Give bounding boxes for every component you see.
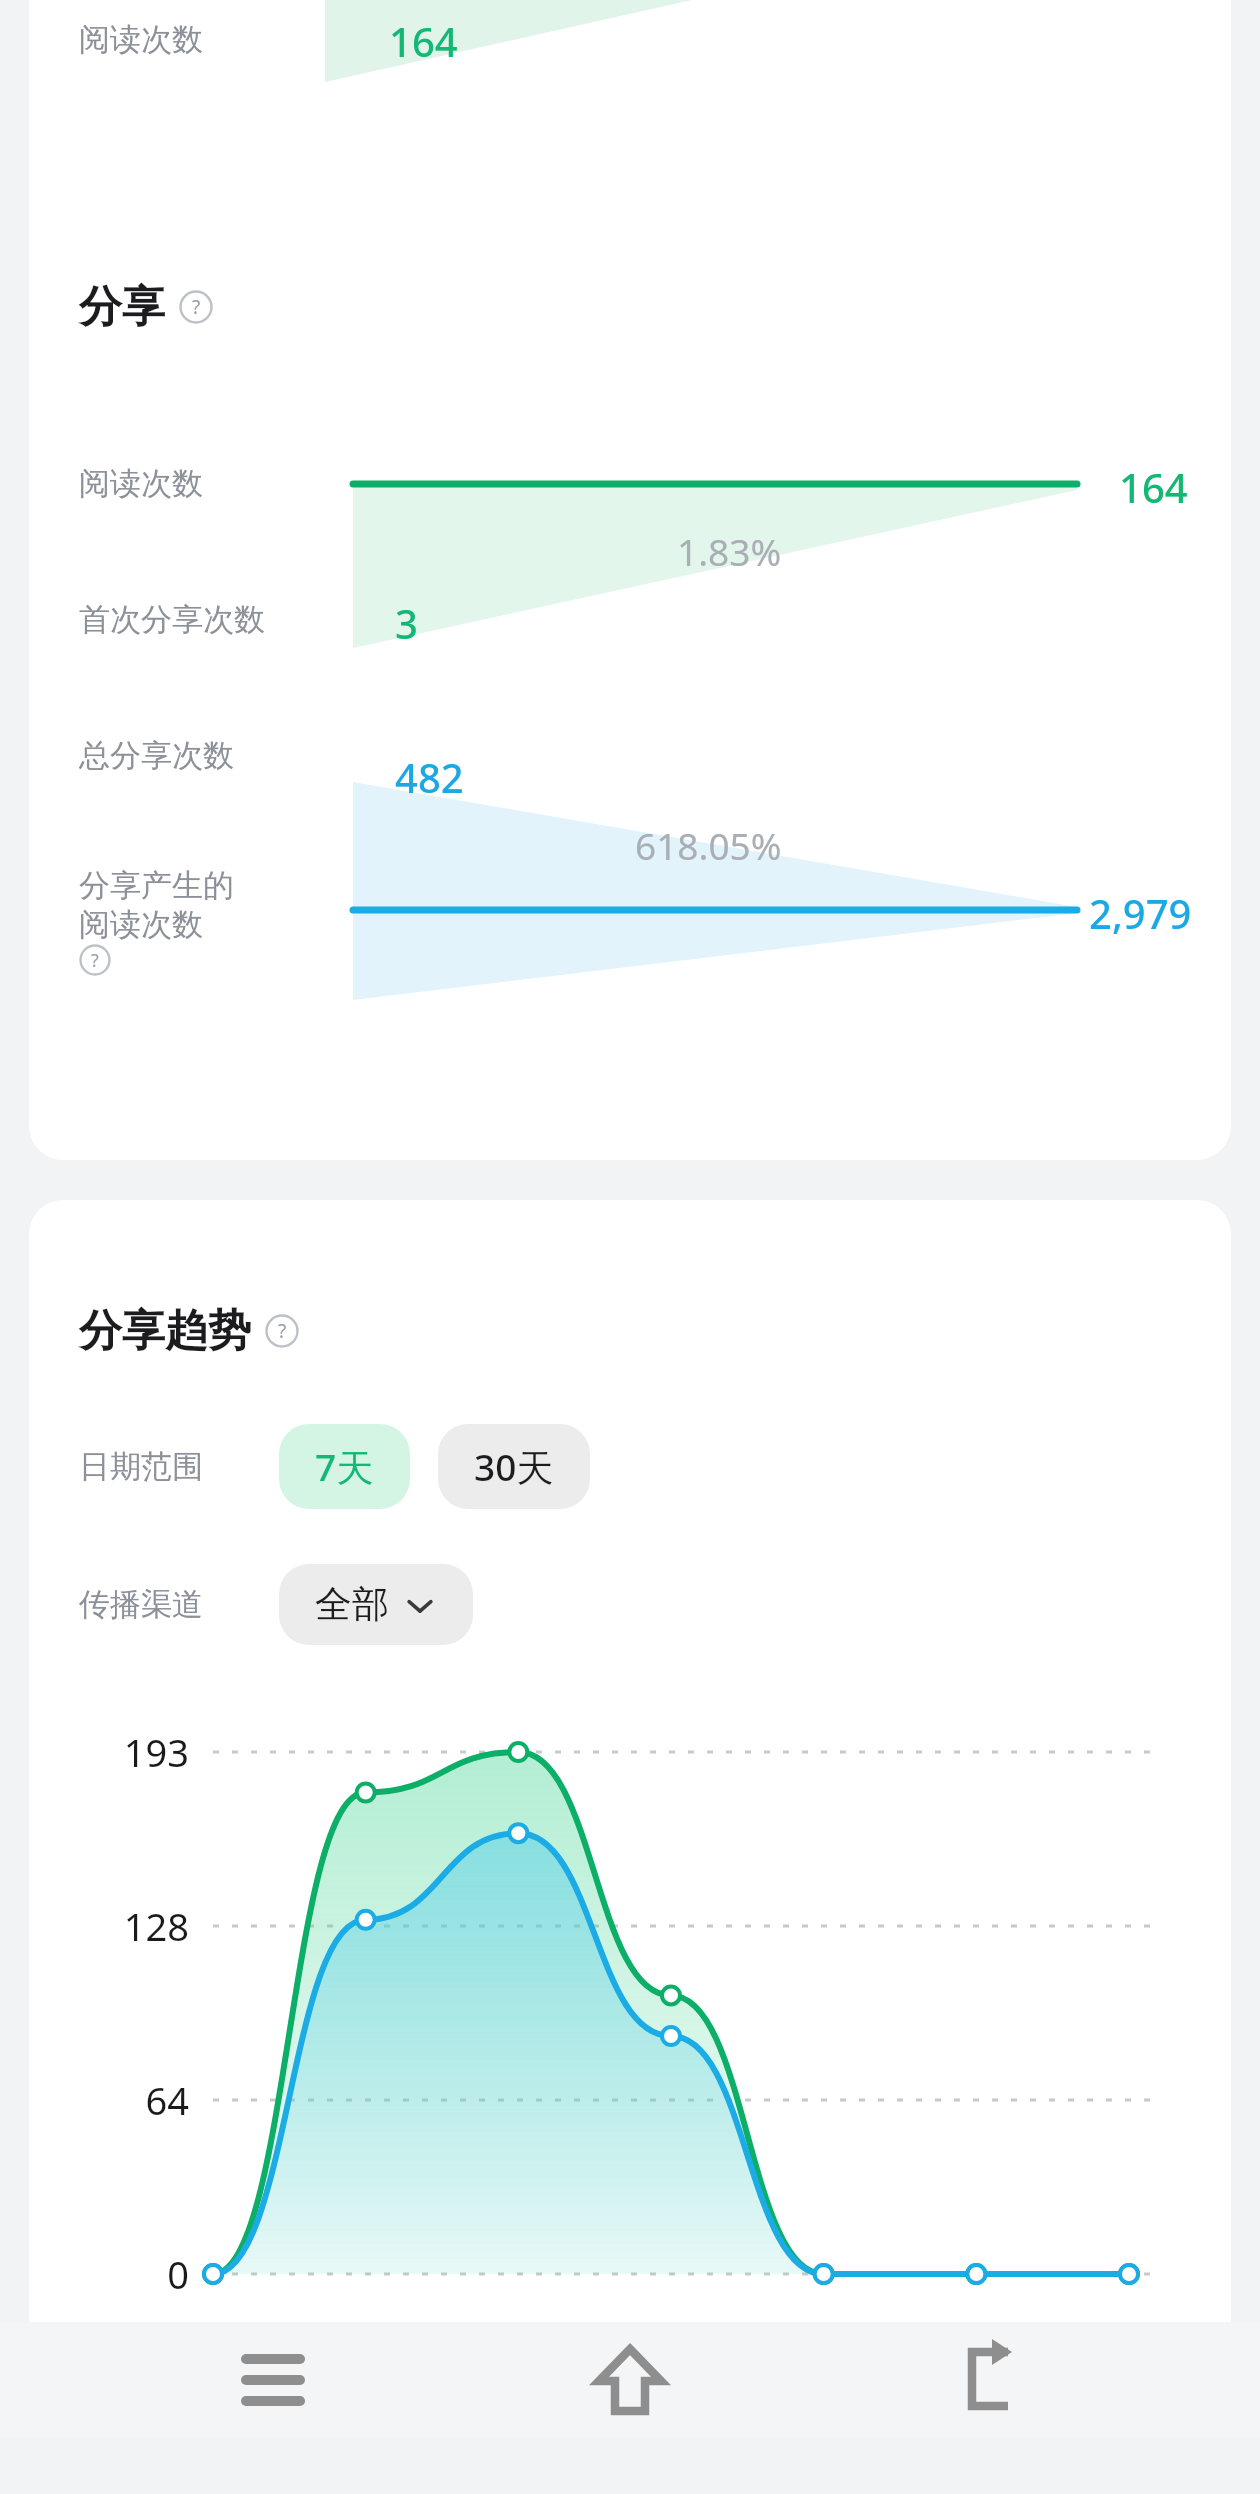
staticText: 2,979 [1089, 886, 1192, 940]
staticText: 07/20 [596, 2318, 746, 2368]
staticText: 07/17 [138, 2318, 288, 2368]
staticText: 总分享次数 [79, 736, 234, 775]
button[interactable]: Help [265, 1314, 299, 1348]
staticText: 分享 [79, 280, 165, 334]
staticText: 阅读次数 [79, 905, 203, 944]
staticText: 分享趋势 [79, 1304, 251, 1358]
staticText: 64 [49, 2074, 189, 2126]
staticText: 传播渠道 [79, 1585, 279, 1624]
button[interactable]: Recent apps [188, 2322, 358, 2438]
button[interactable]: Home [545, 2322, 715, 2438]
button[interactable]: Help [79, 944, 111, 976]
button[interactable]: 30天 [438, 1424, 590, 1509]
staticText: ? [192, 294, 201, 320]
staticText: 首次分享次数 [79, 600, 265, 639]
button[interactable]: Help [179, 290, 213, 324]
staticText: 164 [389, 14, 458, 68]
staticText: 30天 [474, 1441, 554, 1492]
button[interactable]: 全部 [279, 1564, 473, 1645]
staticText: ? [91, 948, 99, 972]
staticText: 07/18 [291, 2318, 441, 2368]
staticText: 3 [395, 596, 418, 650]
staticText: 分享产生的 [79, 866, 234, 905]
staticText: 0 [49, 2248, 189, 2300]
staticText: 618.05% [635, 820, 782, 870]
staticText: 7天 [315, 1441, 374, 1492]
staticText: 164 [1119, 460, 1188, 514]
staticText: 1.83% [677, 526, 782, 576]
staticText: ? [278, 1318, 287, 1344]
staticText: 阅读次数 [79, 20, 203, 59]
staticText: 全部 [315, 1581, 389, 1628]
staticText: 阅读次数 [79, 464, 203, 503]
button[interactable]: 7天 [279, 1424, 410, 1509]
staticText: 482 [395, 750, 464, 804]
staticText: 07/22 [901, 2318, 1051, 2368]
staticText: 128 [49, 1900, 189, 1952]
staticText: 日期范围 [79, 1447, 279, 1486]
button[interactable]: Back [903, 2322, 1073, 2438]
staticText: 193 [49, 1726, 189, 1778]
